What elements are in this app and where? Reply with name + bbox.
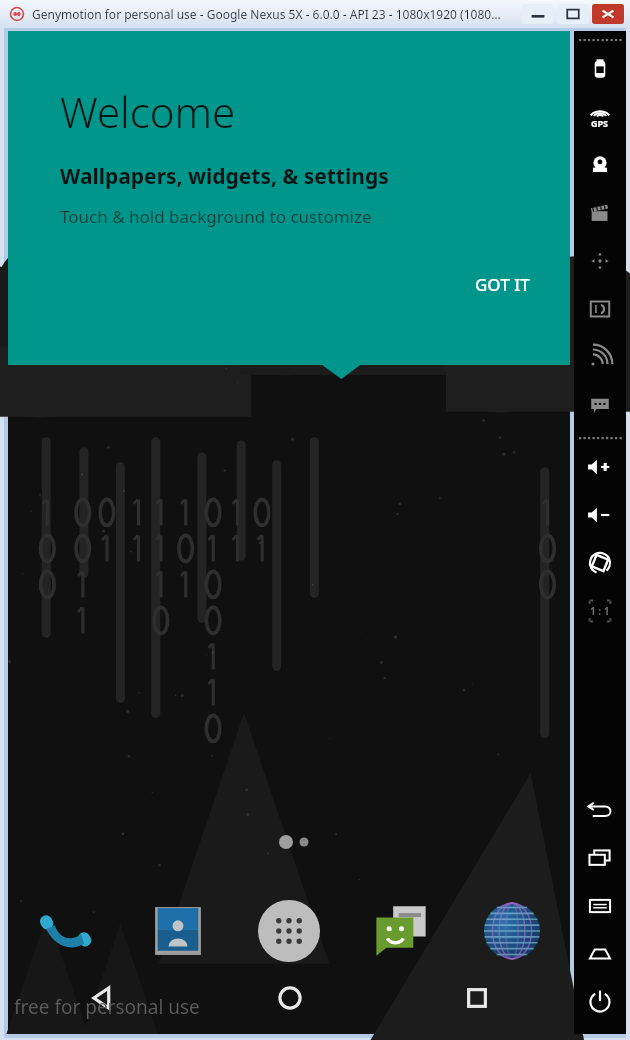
staticText: Wallpapers, widgets, & settings: [60, 162, 389, 191]
button[interactable]: Minimize: [522, 4, 554, 24]
button[interactable]: Scale one to one: [574, 587, 626, 635]
button[interactable]: SMS: [574, 381, 626, 429]
button[interactable]: Camera: [574, 141, 626, 189]
button[interactable]: Battery: [574, 45, 626, 93]
button[interactable]: Back: [574, 786, 626, 834]
button[interactable]: Rotate: [574, 539, 626, 587]
staticText: free for personal use: [14, 994, 200, 1020]
button[interactable]: GPS: [574, 93, 626, 141]
button[interactable]: Volume up: [574, 443, 626, 491]
button[interactable]: Video: [574, 189, 626, 237]
button[interactable]: Menu: [574, 882, 626, 930]
button[interactable]: Maximize: [557, 4, 589, 24]
staticText: Welcome: [60, 83, 236, 140]
button[interactable]: Power: [574, 978, 626, 1026]
staticText: GPS: [591, 117, 609, 129]
staticText: Genymotion for personal use - Google Nex…: [32, 6, 501, 22]
button[interactable]: Home: [196, 962, 383, 1034]
button[interactable]: Network: [574, 333, 626, 381]
button[interactable]: Accelerometer: [574, 237, 626, 285]
button[interactable]: Recents: [383, 962, 570, 1034]
staticText: 1 : 1: [590, 604, 610, 618]
staticText: GOT IT: [475, 273, 530, 296]
button[interactable]: All apps: [251, 893, 327, 969]
button[interactable]: Close: [592, 4, 624, 24]
button[interactable]: Recents: [574, 834, 626, 882]
button[interactable]: Browser: [474, 893, 550, 969]
button[interactable]: Identifiers: [574, 285, 626, 333]
staticText: Touch & hold background to customize: [60, 205, 372, 228]
button[interactable]: Phone: [28, 893, 104, 969]
button[interactable]: Back: [8, 962, 196, 1034]
button[interactable]: Contacts: [140, 893, 216, 969]
button[interactable]: Messaging: [363, 893, 439, 969]
button[interactable]: GOT IT: [461, 263, 544, 306]
button[interactable]: Volume down: [574, 491, 626, 539]
button[interactable]: Home: [574, 930, 626, 978]
